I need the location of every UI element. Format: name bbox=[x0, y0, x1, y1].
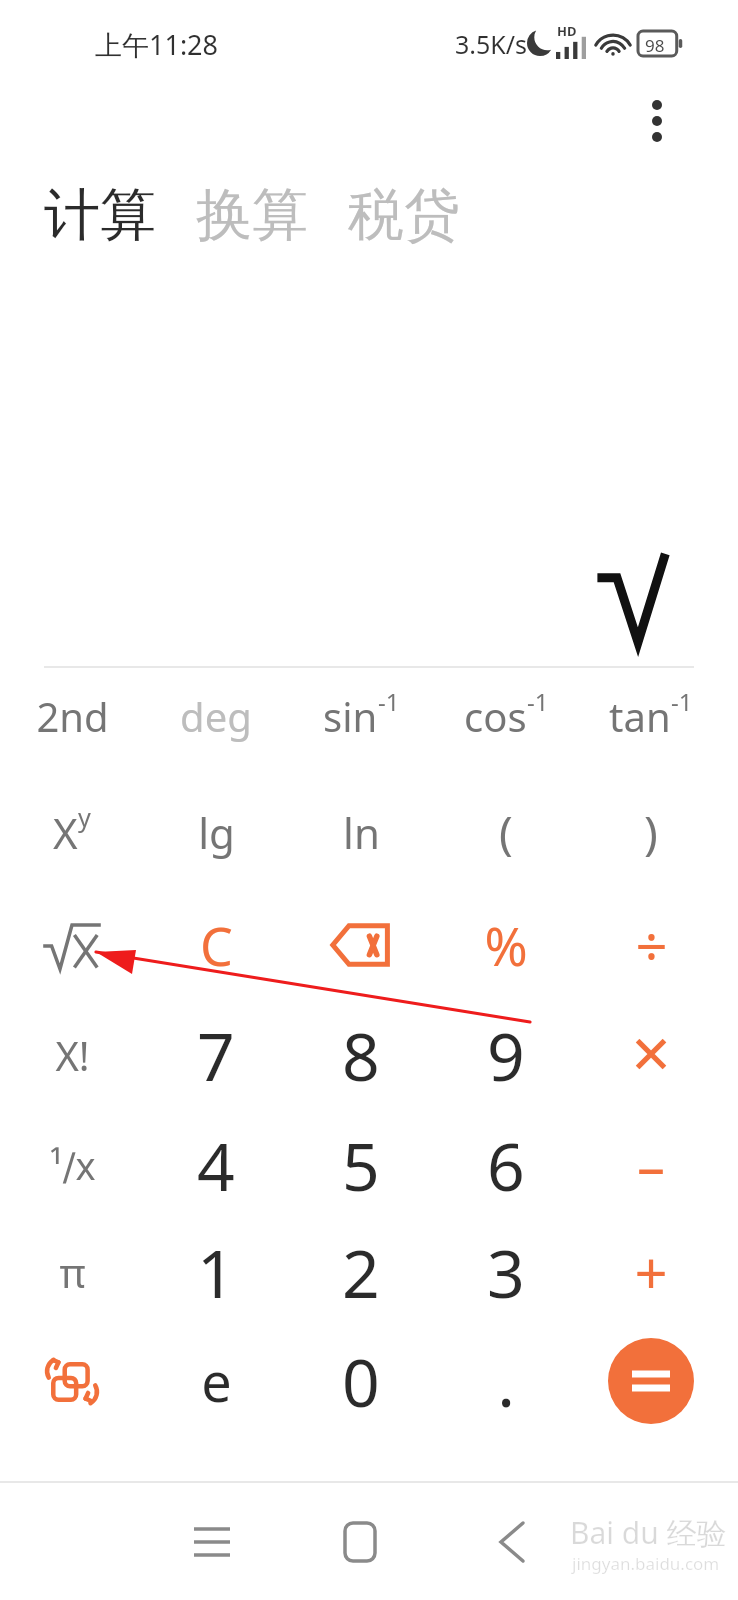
staticText: ✕ bbox=[629, 1025, 673, 1086]
staticText: cos bbox=[464, 689, 527, 743]
staticText: Bai du 经验 bbox=[570, 1512, 727, 1553]
button[interactable]: 0 bbox=[296, 1328, 426, 1434]
staticText: e bbox=[201, 1344, 232, 1418]
button[interactable]: 2nd bbox=[7, 663, 137, 769]
staticText: X bbox=[53, 804, 78, 861]
button[interactable]: Square root bbox=[7, 892, 137, 998]
button[interactable]: 6 bbox=[441, 1112, 571, 1218]
staticText: 3.5K/s bbox=[455, 27, 528, 61]
button[interactable]: Backspace bbox=[296, 892, 426, 998]
staticText: ÷ bbox=[635, 907, 668, 983]
button[interactable]: – bbox=[586, 1112, 716, 1218]
staticText: 98 bbox=[645, 34, 665, 57]
button[interactable]: . bbox=[441, 1328, 571, 1434]
button[interactable]: X! bbox=[7, 1002, 137, 1108]
staticText: HD bbox=[557, 22, 577, 40]
button[interactable]: ) bbox=[586, 779, 716, 885]
button[interactable]: 计算 bbox=[40, 176, 160, 255]
button[interactable]: ¹∕x bbox=[7, 1112, 137, 1218]
staticText: π bbox=[59, 1245, 86, 1299]
button[interactable]: ( bbox=[441, 779, 571, 885]
button[interactable]: 换算 bbox=[192, 176, 312, 255]
staticText: 6 bbox=[487, 1120, 525, 1210]
button[interactable]: Recent apps bbox=[162, 1484, 262, 1600]
button[interactable]: ÷ bbox=[586, 892, 716, 998]
staticText: 4 bbox=[197, 1120, 235, 1210]
staticText: 5 bbox=[342, 1120, 380, 1210]
staticText: – bbox=[637, 1127, 665, 1203]
button[interactable]: π bbox=[7, 1219, 137, 1325]
button[interactable]: lg bbox=[151, 779, 281, 885]
staticText: sin bbox=[323, 689, 378, 743]
button[interactable]: e bbox=[151, 1328, 281, 1434]
staticText: ) bbox=[644, 801, 658, 864]
button[interactable]: Home bbox=[310, 1484, 410, 1600]
button[interactable]: Unit convert bbox=[7, 1328, 137, 1434]
staticText: 9 bbox=[487, 1010, 525, 1100]
staticText: + bbox=[634, 1233, 668, 1312]
staticText: -1 bbox=[527, 685, 549, 718]
staticText: 0 bbox=[342, 1336, 380, 1426]
staticText: -1 bbox=[671, 685, 693, 718]
staticText: 7 bbox=[197, 1010, 235, 1100]
staticText: jingyan.baidu.com bbox=[572, 1552, 720, 1575]
button[interactable]: More options bbox=[622, 86, 692, 156]
staticText: 3 bbox=[487, 1227, 525, 1317]
staticText: 换算 bbox=[196, 180, 308, 251]
button[interactable]: X bbox=[7, 779, 137, 885]
staticText: % bbox=[484, 910, 528, 981]
button[interactable]: 4 bbox=[151, 1112, 281, 1218]
button[interactable]: Back bbox=[462, 1484, 562, 1600]
button[interactable]: % bbox=[441, 892, 571, 998]
staticText: ( bbox=[499, 801, 513, 864]
staticText: 8 bbox=[342, 1010, 380, 1100]
button[interactable]: Equals bbox=[586, 1328, 716, 1434]
staticText: tan bbox=[609, 689, 671, 743]
button[interactable]: 3 bbox=[441, 1219, 571, 1325]
button[interactable]: + bbox=[586, 1219, 716, 1325]
staticText: ¹∕x bbox=[49, 1139, 96, 1191]
staticText: lg bbox=[198, 804, 235, 861]
staticText: -1 bbox=[378, 685, 400, 718]
button[interactable]: deg bbox=[151, 663, 281, 769]
button[interactable]: C bbox=[151, 892, 281, 998]
staticText: 上午11:28 bbox=[95, 26, 219, 63]
staticText: 1 bbox=[197, 1227, 235, 1317]
staticText: 税贷 bbox=[348, 180, 460, 251]
button[interactable]: tan bbox=[586, 663, 716, 769]
button[interactable]: sin bbox=[296, 663, 426, 769]
staticText: ln bbox=[343, 804, 380, 861]
button[interactable]: 2 bbox=[296, 1219, 426, 1325]
button[interactable]: ln bbox=[296, 779, 426, 885]
staticText: X! bbox=[55, 1028, 90, 1082]
button[interactable]: cos bbox=[441, 663, 571, 769]
button[interactable]: ✕ bbox=[586, 1002, 716, 1108]
staticText: deg bbox=[180, 689, 252, 743]
button[interactable]: 7 bbox=[151, 1002, 281, 1108]
button[interactable]: 8 bbox=[296, 1002, 426, 1108]
staticText: 2nd bbox=[36, 689, 109, 743]
staticText: y bbox=[78, 800, 91, 834]
staticText: C bbox=[200, 910, 233, 981]
button[interactable]: 9 bbox=[441, 1002, 571, 1108]
button[interactable]: 税贷 bbox=[344, 176, 464, 255]
button[interactable]: 5 bbox=[296, 1112, 426, 1218]
staticText: 计算 bbox=[44, 180, 156, 251]
button[interactable]: 1 bbox=[151, 1219, 281, 1325]
staticText: . bbox=[497, 1336, 515, 1426]
staticText: 2 bbox=[342, 1227, 380, 1317]
